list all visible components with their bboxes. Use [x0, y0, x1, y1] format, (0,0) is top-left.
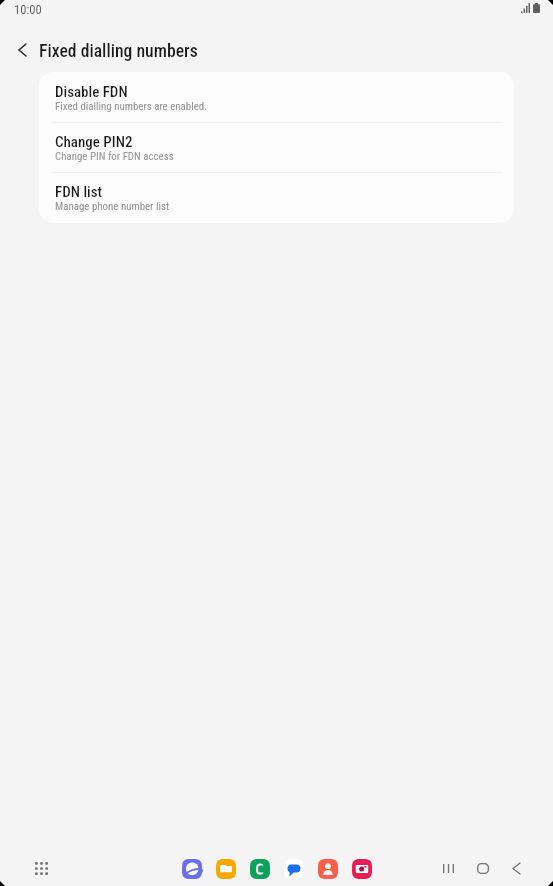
- button[interactable]: Navigate up: [4, 30, 40, 70]
- button[interactable]: Contacts: [311, 856, 345, 882]
- staticText: 10:00: [14, 2, 42, 17]
- button[interactable]: My Files: [209, 856, 243, 882]
- staticText: Fixed dialling numbers: [39, 41, 198, 62]
- staticText: Fixed dialling numbers are enabled.: [55, 100, 208, 113]
- button[interactable]: Phone: [243, 856, 277, 882]
- button[interactable]: Apps: [28, 855, 54, 881]
- button[interactable]: Internet: [175, 856, 209, 882]
- button[interactable]: Recents: [431, 855, 466, 881]
- button[interactable]: FDN list: [39, 172, 514, 223]
- button[interactable]: Change PIN2: [39, 122, 514, 172]
- button[interactable]: Back: [499, 855, 534, 881]
- staticText: Change PIN for FDN access: [55, 150, 174, 163]
- staticText: FDN list: [55, 183, 102, 201]
- button[interactable]: Disable FDN: [39, 72, 514, 122]
- button[interactable]: Camera: [345, 856, 379, 882]
- button[interactable]: Messages: [277, 856, 311, 882]
- staticText: Manage phone number list: [55, 200, 170, 213]
- button[interactable]: Home: [465, 855, 500, 881]
- staticText: Change PIN2: [55, 133, 133, 151]
- staticText: Disable FDN: [55, 83, 128, 101]
